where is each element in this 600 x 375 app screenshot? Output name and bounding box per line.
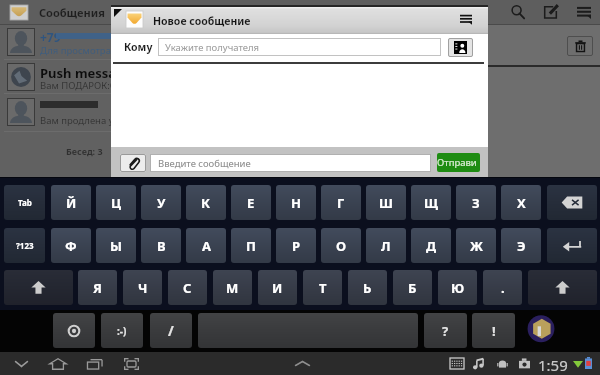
staticText: Введите сообщение <box>158 157 251 170</box>
button[interactable]: М <box>213 270 252 305</box>
button[interactable]: Щ <box>411 185 451 220</box>
button[interactable]: Ж <box>456 228 496 263</box>
staticText: ? <box>442 322 449 340</box>
button[interactable]: Recents <box>80 352 110 375</box>
staticText: :-) <box>117 324 127 338</box>
button[interactable]: ?123 <box>4 228 45 263</box>
button[interactable]: Г <box>321 185 361 220</box>
button[interactable]: New message <box>534 0 567 24</box>
staticText: Кому <box>124 40 153 54</box>
button[interactable]: Ш <box>366 185 406 220</box>
button[interactable]: У <box>141 185 181 220</box>
staticText: Ч <box>138 279 148 297</box>
button[interactable]: Choose contact <box>448 38 473 57</box>
staticText: 1:59 <box>538 355 568 375</box>
button[interactable]: Hide keyboard <box>6 352 36 375</box>
staticText: Т <box>319 279 327 297</box>
button[interactable]: Т <box>303 270 342 305</box>
button[interactable]: ? <box>424 313 467 348</box>
staticText: Ь <box>363 279 372 297</box>
staticText: Сообщения <box>39 5 105 20</box>
button[interactable]: Attach <box>120 154 146 172</box>
staticText: Х <box>517 194 526 212</box>
button[interactable]: И <box>258 270 297 305</box>
button[interactable]: Укажите получателя <box>158 38 441 56</box>
button[interactable]: :-) <box>101 313 143 348</box>
staticText: Ю <box>451 279 465 297</box>
button[interactable]: Л <box>366 228 406 263</box>
button[interactable]: Н <box>276 185 316 220</box>
button[interactable]: Й <box>51 185 91 220</box>
staticText: К <box>201 194 211 212</box>
button[interactable]: С <box>168 270 207 305</box>
staticText: Б <box>408 279 417 297</box>
button[interactable]: Screenshot <box>116 352 146 375</box>
staticText: ?123 <box>16 240 34 251</box>
staticText: Ш <box>379 194 393 212</box>
staticText: +79 <box>40 29 61 45</box>
staticText: Ф <box>65 237 77 255</box>
button[interactable] <box>198 313 418 348</box>
staticText: Push message <box>40 64 133 82</box>
button[interactable]: З <box>456 185 496 220</box>
staticText: П <box>246 237 256 255</box>
staticText: Бесед: 3 <box>66 145 103 157</box>
button[interactable]: П <box>231 228 271 263</box>
button[interactable]: More options <box>448 5 484 33</box>
button[interactable]: Tab <box>4 185 45 220</box>
button[interactable]: Push message <box>0 60 488 93</box>
button[interactable]: Э <box>501 228 541 263</box>
button[interactable]: Expand <box>287 352 317 375</box>
button[interactable]: Home <box>43 352 73 375</box>
staticText: . <box>501 279 505 297</box>
button[interactable]: Д <box>411 228 451 263</box>
button[interactable]: Р <box>276 228 316 263</box>
button[interactable]: Shift <box>528 270 597 305</box>
staticText: Я <box>93 279 102 297</box>
staticText: Л <box>381 237 391 255</box>
button[interactable]: Ф <box>51 228 91 263</box>
staticText: И <box>272 279 283 297</box>
staticText: Tab <box>18 197 32 208</box>
button[interactable]: Backspace <box>547 185 597 220</box>
button[interactable]: Shift <box>4 270 73 305</box>
button[interactable]: . <box>483 270 522 305</box>
button[interactable]: Ц <box>96 185 136 220</box>
button[interactable]: Delete <box>567 36 593 56</box>
button[interactable]: Ю <box>438 270 477 305</box>
button[interactable]: ! <box>472 313 515 348</box>
button[interactable]: О <box>321 228 361 263</box>
button[interactable]: Х <box>501 185 541 220</box>
button[interactable]: Search <box>501 0 534 24</box>
button[interactable]: Введите сообщение <box>150 154 431 172</box>
button[interactable]: Вам продлена ус.. <box>0 95 488 129</box>
staticText: У <box>157 194 166 212</box>
button[interactable]: / <box>150 313 192 348</box>
staticText: / <box>168 321 174 340</box>
staticText: Н <box>291 194 302 212</box>
staticText: Вам продлена ус.. <box>40 114 124 127</box>
staticText: Ж <box>470 237 483 255</box>
staticText: Е <box>247 194 255 212</box>
button[interactable]: Я <box>78 270 117 305</box>
button[interactable]: Ы <box>96 228 136 263</box>
staticText: Отправит <box>437 156 480 169</box>
button[interactable]: Enter <box>547 228 597 263</box>
button[interactable]: More options <box>567 0 600 24</box>
button[interactable]: К <box>186 185 226 220</box>
button[interactable]: Е <box>231 185 271 220</box>
button[interactable]: А <box>186 228 226 263</box>
staticText: Для просмотра МЫ <box>40 44 131 57</box>
staticText: Д <box>426 237 437 255</box>
staticText: О <box>336 237 347 255</box>
button[interactable]: Ч <box>123 270 162 305</box>
button[interactable]: В <box>141 228 181 263</box>
staticText: ! <box>492 322 496 340</box>
staticText: З <box>472 194 480 212</box>
staticText: С <box>183 279 192 297</box>
button[interactable]: Отправит <box>437 153 480 172</box>
button[interactable]: +79 <box>0 25 488 59</box>
button[interactable]: Б <box>393 270 432 305</box>
button[interactable]: Ь <box>348 270 387 305</box>
button[interactable]: Keyboard settings <box>53 313 95 348</box>
